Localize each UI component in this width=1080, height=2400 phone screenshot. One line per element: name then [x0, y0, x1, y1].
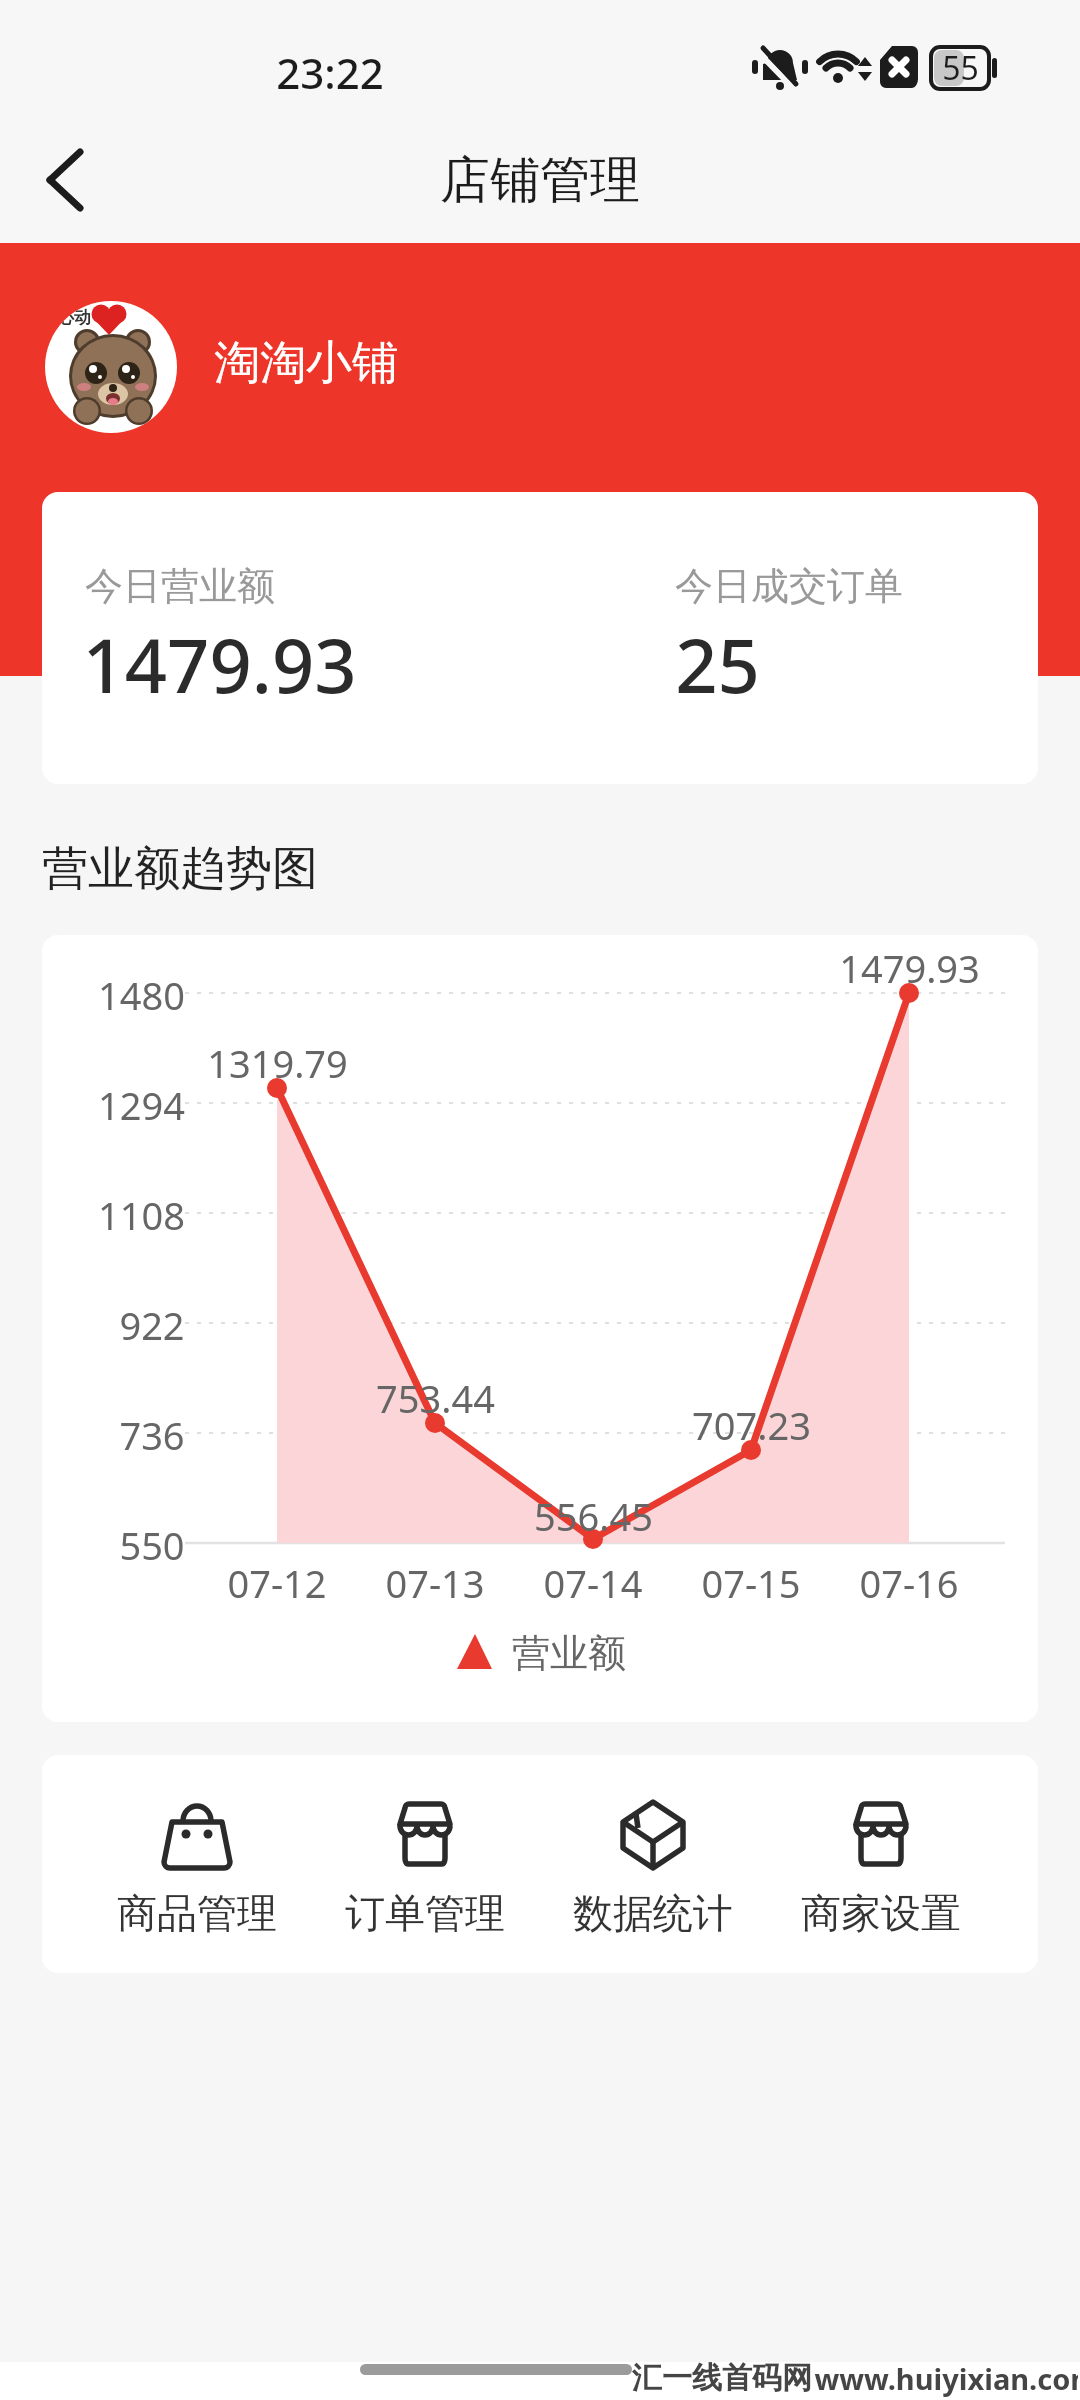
- staticText: 736: [119, 1409, 185, 1457]
- staticText: 今日成交订单: [675, 562, 903, 608]
- staticText: 数据统计: [573, 1888, 733, 1938]
- staticText: 1479.93: [82, 614, 357, 704]
- staticText: 753.44: [376, 1372, 495, 1418]
- staticText: 1319.79: [207, 1037, 348, 1083]
- button[interactable]: 商家设置: [767, 1755, 995, 1973]
- button[interactable]: 商品管理: [83, 1755, 311, 1973]
- staticText: 1108: [98, 1189, 185, 1237]
- staticText: 550: [119, 1519, 185, 1567]
- staticText: 556.45: [534, 1490, 653, 1536]
- staticText: 55: [942, 46, 979, 90]
- staticText: 25: [675, 614, 760, 704]
- staticText: 07-14: [543, 1557, 643, 1603]
- staticText: 707.23: [692, 1399, 811, 1445]
- staticText: 商家设置: [801, 1888, 961, 1938]
- staticText: 23:22: [276, 44, 384, 92]
- staticText: 营业额: [512, 1629, 626, 1675]
- staticText: 07-15: [701, 1557, 801, 1603]
- button[interactable]: [44, 150, 88, 210]
- staticText: 心动: [57, 307, 91, 328]
- staticText: 店铺管理: [440, 149, 640, 212]
- staticText: 07-16: [859, 1557, 959, 1603]
- staticText: 1480: [98, 969, 185, 1017]
- staticText: 07-13: [385, 1557, 485, 1603]
- staticText: www.huiyixian.com: [814, 2359, 1078, 2398]
- staticText: 922: [119, 1299, 185, 1347]
- button[interactable]: 数据统计: [539, 1755, 767, 1973]
- staticText: 营业额趋势图: [42, 840, 318, 896]
- staticText: 订单管理: [345, 1888, 505, 1938]
- staticText: 1294: [98, 1079, 185, 1127]
- staticText: 1479.93: [839, 942, 980, 988]
- staticText: 淘淘小铺: [214, 334, 398, 390]
- button[interactable]: 订单管理: [311, 1755, 539, 1973]
- staticText: 今日营业额: [85, 562, 275, 608]
- staticText: 商品管理: [117, 1888, 277, 1938]
- staticText: 汇一线首码网: [632, 2359, 812, 2397]
- staticText: 07-12: [227, 1557, 327, 1603]
